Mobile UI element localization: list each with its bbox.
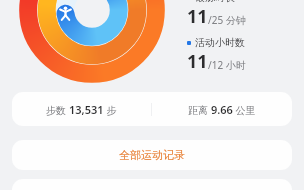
staticText: 活动小时数 (195, 36, 245, 49)
staticText: 步数 (46, 103, 69, 117)
staticText: 11 (187, 4, 208, 29)
button[interactable]: Activity rings (16, 0, 168, 86)
staticText: 11 (187, 49, 208, 74)
button[interactable]: 全部运动记录 (12, 140, 292, 170)
staticText: 距离 (188, 103, 211, 117)
staticText: 步 (104, 103, 117, 117)
staticText: /25 分钟 (208, 13, 246, 27)
staticText: 全部运动记录 (119, 148, 185, 162)
staticText: 公里 (233, 103, 256, 117)
staticText: 9.66 (211, 102, 233, 117)
staticText: 锻炼时长 (195, 0, 235, 4)
button[interactable]: 步数 (12, 92, 292, 126)
staticText: /12 小时 (208, 58, 246, 72)
staticText: 13,531 (69, 102, 104, 117)
